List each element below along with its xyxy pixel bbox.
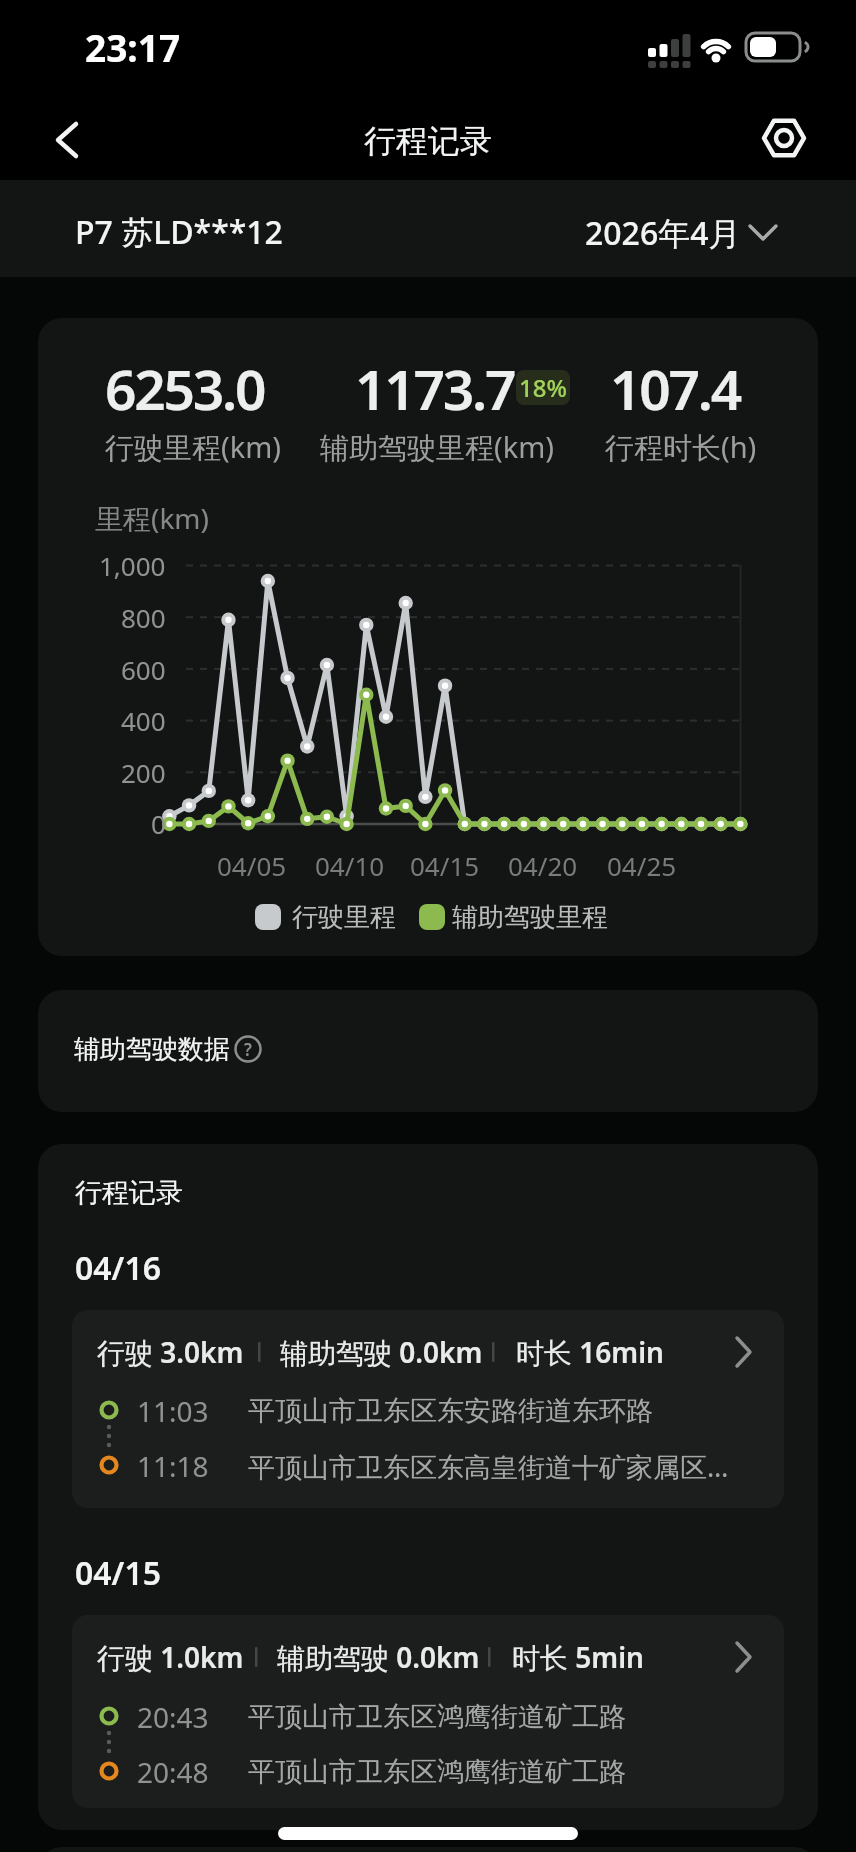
staticText: 6253.0 bbox=[105, 351, 265, 426]
button[interactable] bbox=[570, 195, 800, 265]
button[interactable] bbox=[754, 108, 814, 168]
staticText: 04/25 bbox=[607, 848, 677, 883]
staticText: 行程记录 bbox=[364, 121, 492, 161]
staticText: 辅助驾驶 0.0km bbox=[280, 1333, 483, 1371]
staticText: 20:48 bbox=[137, 1753, 209, 1791]
staticText: 平顶山市卫东区鸿鹰街道矿工路 bbox=[248, 1700, 626, 1734]
staticText: 1,000 bbox=[99, 548, 166, 583]
staticText: 04/15 bbox=[75, 1551, 161, 1595]
staticText: 11:18 bbox=[137, 1447, 209, 1485]
staticText: 行驶 3.0km bbox=[97, 1333, 244, 1371]
staticText: 600 bbox=[121, 652, 166, 687]
button[interactable] bbox=[72, 1615, 784, 1808]
staticText: 行驶里程 bbox=[292, 901, 396, 934]
staticText: 04/10 bbox=[315, 848, 385, 883]
button[interactable] bbox=[38, 990, 818, 1112]
staticText: 0 bbox=[151, 806, 166, 841]
staticText: 行程记录 bbox=[75, 1176, 183, 1210]
staticText: P7 苏LD***12 bbox=[75, 210, 283, 254]
staticText: 23:17 bbox=[85, 22, 181, 72]
staticText: 辅助驾驶数据 bbox=[74, 1033, 230, 1066]
staticText: 04/20 bbox=[508, 848, 578, 883]
staticText: 18% bbox=[519, 371, 567, 404]
staticText: 平顶山市卫东区鸿鹰街道矿工路 bbox=[248, 1755, 626, 1789]
staticText: 1173.7 bbox=[355, 351, 515, 426]
staticText: 平顶山市卫东区东安路街道东环路 bbox=[248, 1394, 653, 1428]
staticText: 04/15 bbox=[410, 848, 480, 883]
staticText: 行驶里程(km) bbox=[105, 427, 282, 467]
staticText: 800 bbox=[121, 600, 166, 635]
staticText: 04/05 bbox=[217, 848, 287, 883]
staticText: 行程时长(h) bbox=[605, 427, 757, 467]
button[interactable] bbox=[38, 110, 98, 170]
button[interactable] bbox=[72, 1310, 784, 1508]
staticText: 04/16 bbox=[75, 1246, 161, 1290]
staticText: ? bbox=[244, 1038, 252, 1061]
staticText: 时长 16min bbox=[516, 1333, 664, 1371]
staticText: 辅助驾驶里程(km) bbox=[320, 427, 555, 467]
staticText: 20:43 bbox=[137, 1698, 209, 1736]
staticText: 107.4 bbox=[610, 351, 741, 426]
staticText: 里程(km) bbox=[95, 499, 209, 537]
staticText: 时长 5min bbox=[512, 1638, 644, 1676]
staticText: 平顶山市卫东区东高皇街道十矿家属区… bbox=[248, 1448, 729, 1485]
staticText: 辅助驾驶 0.0km bbox=[277, 1638, 480, 1676]
staticText: 200 bbox=[121, 755, 166, 790]
staticText: 辅助驾驶里程 bbox=[452, 901, 608, 934]
staticText: 行驶 1.0km bbox=[97, 1638, 244, 1676]
staticText: 400 bbox=[121, 703, 166, 738]
staticText: 2026年4月 bbox=[585, 211, 741, 255]
staticText: 11:03 bbox=[137, 1392, 209, 1430]
